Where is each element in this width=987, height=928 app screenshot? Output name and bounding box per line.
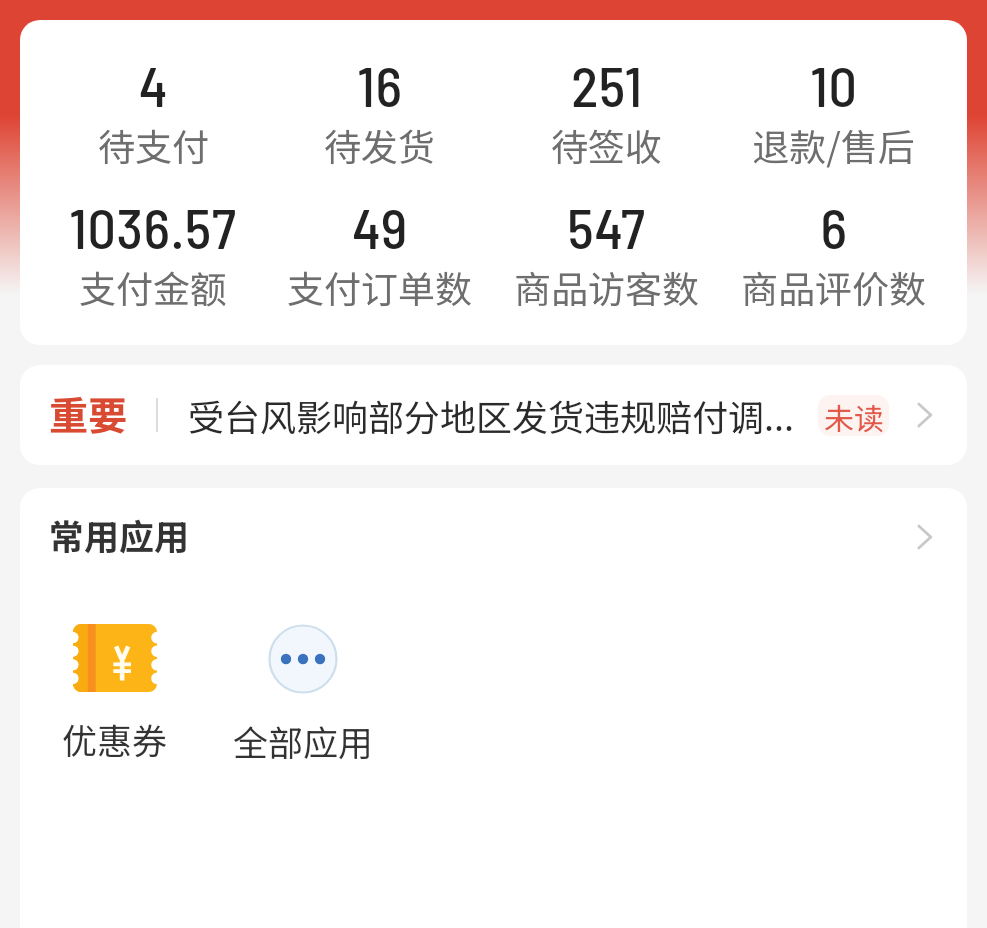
staticText: 4 [139, 51, 168, 118]
staticText: 全部应用 [233, 715, 374, 766]
staticText: 待支付 [98, 118, 209, 172]
staticText: 商品访客数 [514, 260, 699, 314]
staticText: 常用应用 [49, 509, 190, 560]
button[interactable]: 1036.57 [40, 193, 266, 314]
staticText: 重要 [49, 385, 128, 441]
staticText: 支付金额 [79, 260, 227, 314]
button[interactable]: 547 [493, 193, 720, 314]
staticText: 16 [357, 51, 403, 118]
staticText: 251 [571, 51, 643, 118]
button[interactable]: 251 [493, 51, 720, 172]
staticText: 未读 [824, 395, 884, 436]
staticText: 优惠券 [62, 713, 168, 764]
staticText: 1036.57 [69, 193, 237, 260]
button[interactable]: 全部应用 [228, 624, 378, 766]
button[interactable]: 49 [266, 193, 493, 314]
staticText: 商品评价数 [741, 260, 926, 314]
staticText: 6 [820, 193, 848, 260]
button[interactable]: 常用应用 [20, 509, 967, 560]
staticText: 547 [567, 193, 646, 260]
button[interactable]: Open notice [903, 395, 943, 435]
staticText: 受台风影响部分地区发货违规赔付调... [188, 389, 810, 441]
button[interactable]: 优惠券 [40, 624, 190, 764]
button[interactable]: 4 [40, 51, 266, 172]
staticText: 支付订单数 [287, 260, 472, 314]
staticText: 49 [352, 193, 408, 260]
staticText: 10 [810, 51, 858, 118]
button[interactable]: 重要 [20, 365, 967, 465]
staticText: 待发货 [324, 118, 435, 172]
staticText: 退款/售后 [752, 118, 915, 172]
button[interactable]: 6 [720, 193, 947, 314]
button[interactable]: All apps [903, 517, 943, 557]
button[interactable]: 10 [720, 51, 947, 172]
staticText: 待签收 [551, 118, 662, 172]
button[interactable]: 16 [266, 51, 493, 172]
